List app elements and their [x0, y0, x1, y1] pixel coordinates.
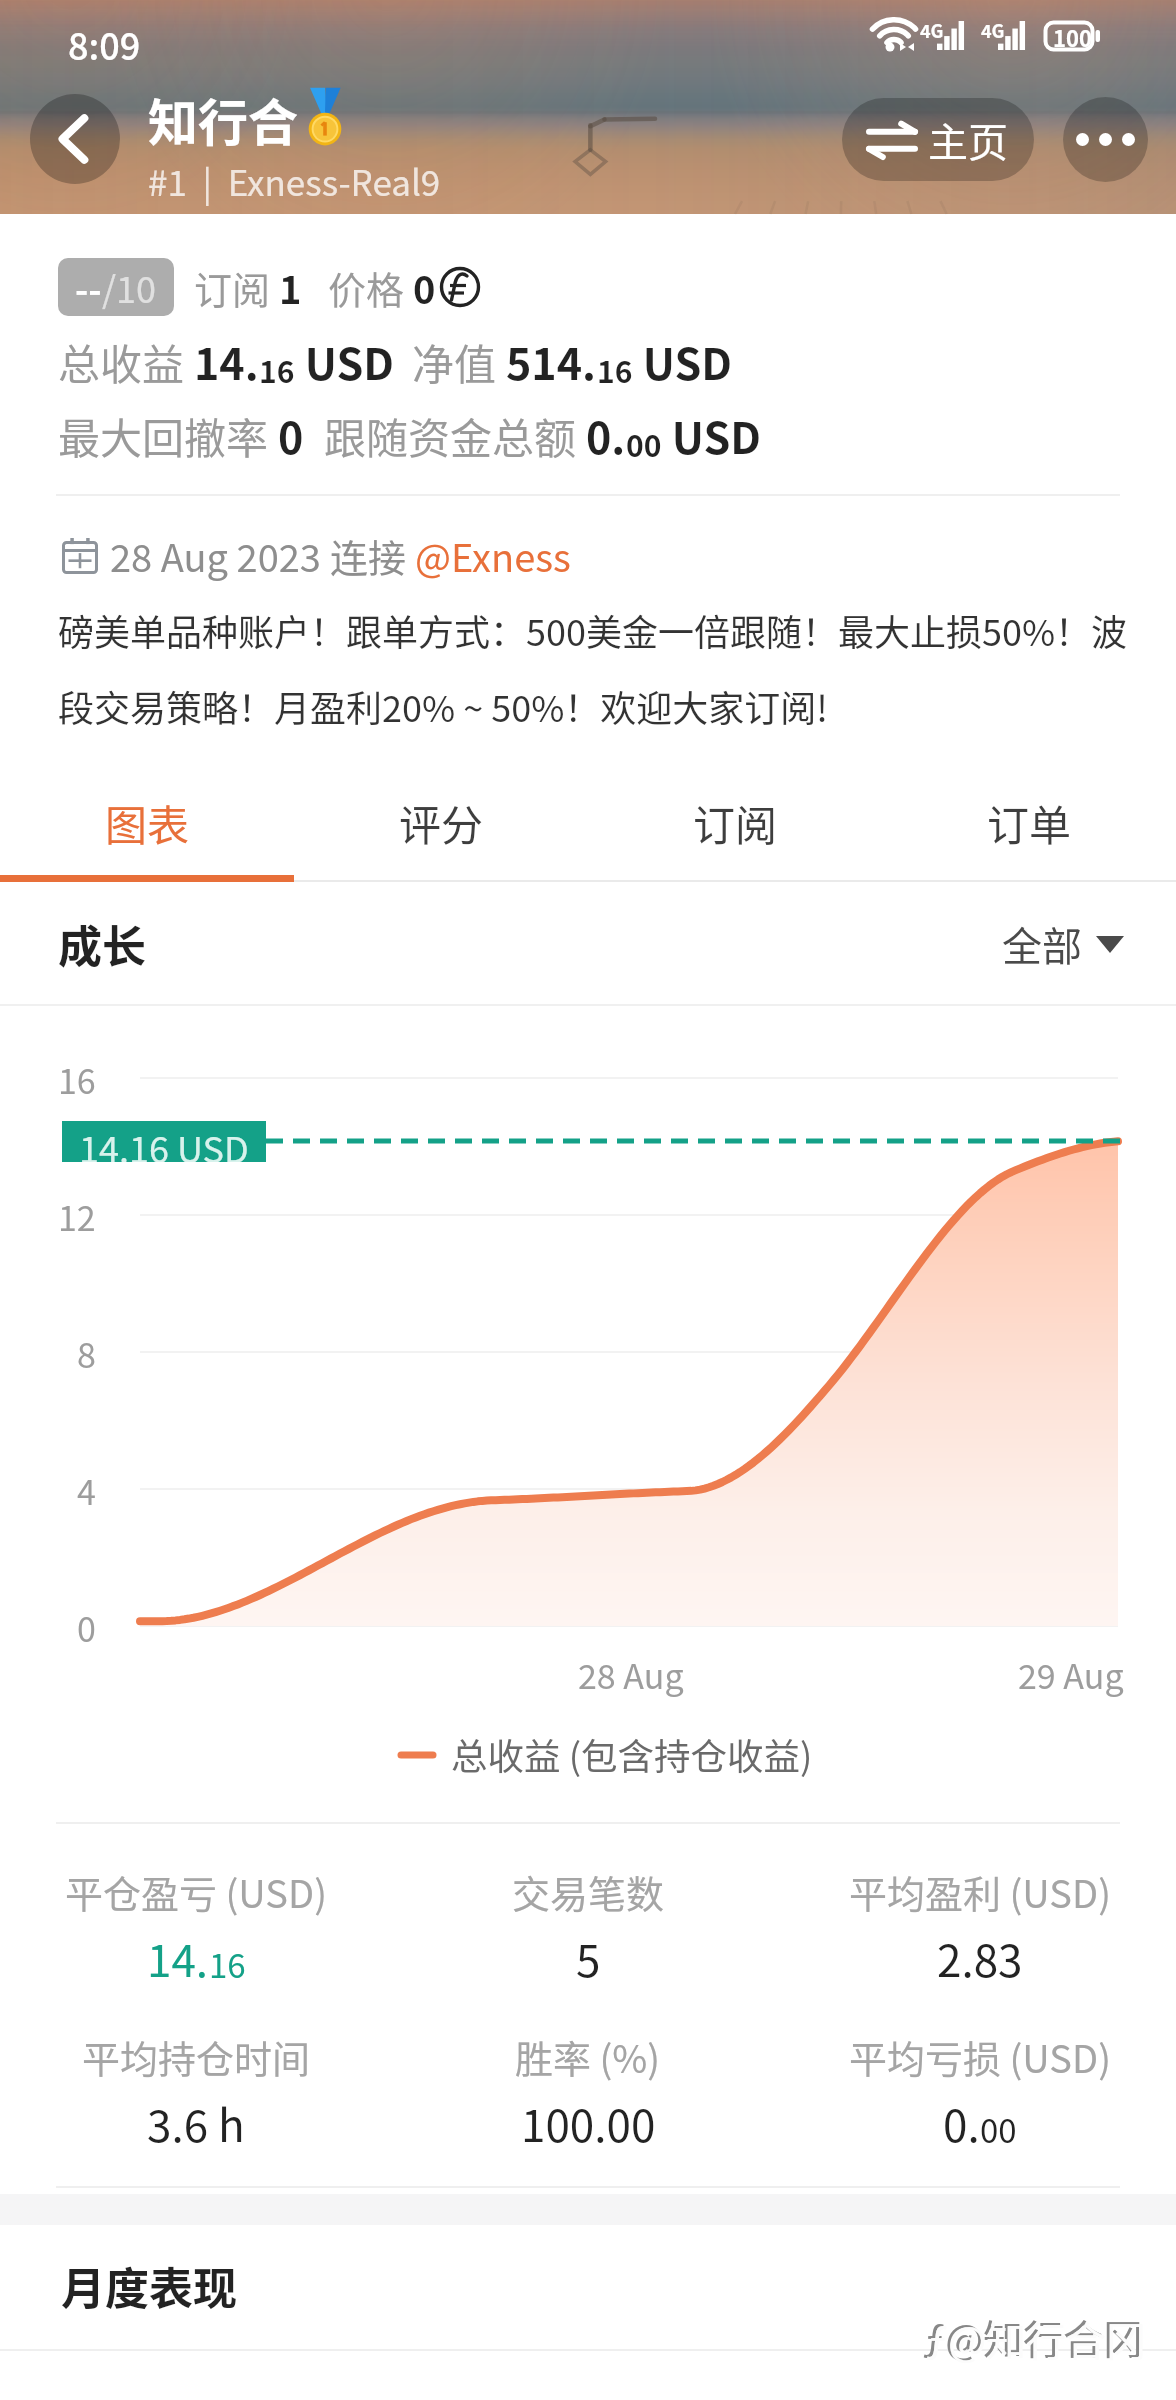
- staticText: 平均持仓时间: [82, 2029, 311, 2084]
- staticText: 3.6 h: [147, 2091, 245, 2155]
- staticText: 0.: [586, 404, 626, 466]
- staticText: USD: [662, 404, 761, 466]
- staticText: 交易笔数: [512, 1864, 665, 1919]
- staticText: 514.: [506, 330, 597, 392]
- staticText: 00: [980, 2105, 1017, 2153]
- staticText: 净值: [412, 331, 506, 392]
- button[interactable]: 评分: [294, 762, 588, 882]
- button[interactable]: 订阅: [588, 762, 882, 882]
- staticText: USD: [633, 330, 732, 392]
- staticText: 0: [278, 404, 304, 466]
- button[interactable]: 订单: [882, 762, 1176, 882]
- staticText: 成长: [58, 912, 146, 976]
- staticText: 图表: [105, 792, 190, 853]
- staticText: 28 Aug 2023: [110, 528, 330, 583]
- staticText: 平均盈利 (USD): [849, 1864, 1111, 1919]
- staticText: 总收益: [58, 331, 194, 392]
- staticText: 总收益 (包含持仓收益): [451, 1728, 813, 1781]
- button[interactable]: Back: [30, 94, 120, 184]
- staticText: 14.16 USD: [79, 1121, 249, 1162]
- staticText: 平均亏损 (USD): [849, 2029, 1111, 2084]
- button[interactable]: More options: [1063, 97, 1148, 182]
- staticText: 8: [77, 1329, 96, 1378]
- staticText: 28 Aug: [578, 1650, 684, 1699]
- staticText: 12: [58, 1192, 96, 1241]
- button[interactable]: 全部: [1002, 915, 1124, 973]
- staticText: 0.: [943, 2091, 980, 2155]
- staticText: 主页: [928, 111, 1008, 169]
- staticText: 16: [209, 1940, 246, 1988]
- staticText: 16: [597, 348, 633, 391]
- staticText: 5: [576, 1926, 601, 1990]
- staticText: 评分: [399, 792, 484, 853]
- staticText: #1 | Exness-Real9: [148, 155, 441, 206]
- staticText: 连接: [330, 528, 415, 583]
- staticText: 平仓盈亏 (USD): [65, 1864, 327, 1919]
- staticText: 4G: [981, 17, 1005, 43]
- staticText: 100: [1053, 21, 1092, 51]
- staticText: 订阅: [194, 260, 279, 315]
- staticText: 全部: [1002, 915, 1082, 973]
- staticText: 价格: [328, 260, 413, 315]
- staticText: 16: [58, 1055, 96, 1104]
- staticText: 1: [279, 260, 302, 315]
- staticText: 16: [259, 348, 295, 391]
- staticText: ƒ@知行合冈: [923, 2308, 1144, 2366]
- staticText: 29 Aug: [1018, 1650, 1124, 1699]
- button[interactable]: 主页: [842, 98, 1034, 181]
- staticText: 月度表现: [61, 2254, 237, 2318]
- staticText: 00: [626, 422, 662, 465]
- staticText: @Exness: [415, 528, 571, 583]
- staticText: 0: [77, 1603, 96, 1652]
- staticText: 4: [77, 1466, 96, 1515]
- staticText: 跟随资金总额: [324, 405, 586, 466]
- staticText: USD: [295, 330, 394, 392]
- staticText: 14.: [147, 1926, 209, 1990]
- button[interactable]: 图表: [0, 762, 294, 882]
- staticText: 最大回撤率: [58, 405, 278, 466]
- staticText: 4G: [920, 17, 944, 43]
- staticText: 订单: [987, 792, 1072, 853]
- staticText: 14.: [194, 330, 259, 392]
- staticText: 2.83: [937, 1926, 1023, 1990]
- staticText: /10: [102, 261, 157, 313]
- staticText: --: [75, 261, 102, 313]
- staticText: 订阅: [693, 792, 778, 853]
- staticText: 0: [413, 260, 436, 315]
- staticText: 知行合: [148, 83, 298, 155]
- staticText: 8:09: [68, 18, 141, 70]
- staticText: 胜率 (%): [515, 2029, 661, 2084]
- staticText: ƒ@知行合冈: [926, 2310, 1147, 2368]
- staticText: 磅美单品种账户！跟单方式：500美金一倍跟随！最大止损50%！波段交易策略！月盈…: [58, 604, 1148, 732]
- staticText: 100.00: [521, 2091, 656, 2155]
